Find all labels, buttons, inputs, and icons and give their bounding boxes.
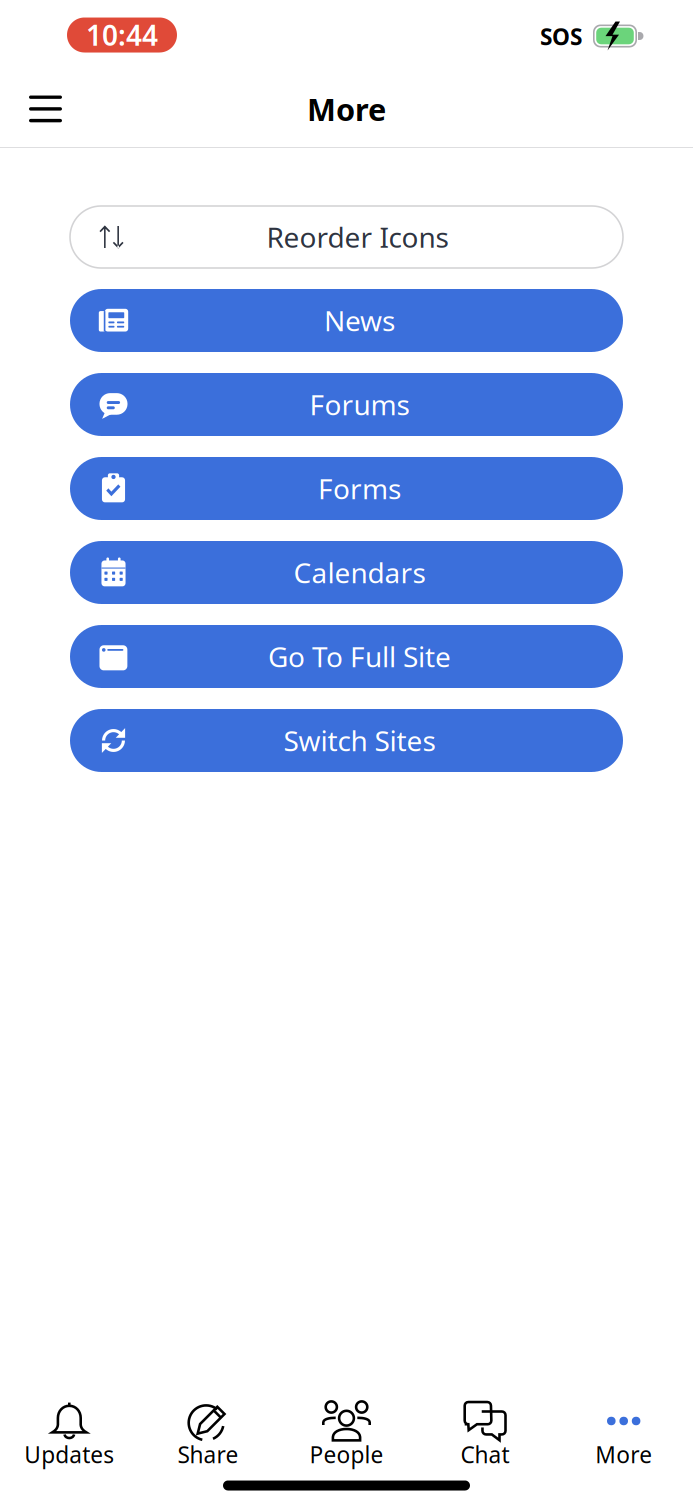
button[interactable]: Switch Sites [70,709,623,772]
staticText: People [309,1439,383,1469]
staticText: 10:44 [86,16,158,54]
button[interactable]: Forms [70,457,623,520]
staticText: More [307,89,386,129]
button[interactable]: Reorder Icons [70,206,623,268]
staticText: More [595,1439,652,1469]
button[interactable]: Calendars [70,541,623,604]
button[interactable]: More [554,1389,693,1471]
staticText: News [324,302,395,339]
staticText: Switch Sites [283,722,435,759]
button[interactable]: Chat [416,1389,554,1471]
staticText: SOS [540,21,582,51]
button[interactable]: News [70,289,623,352]
staticText: Updates [24,1439,114,1469]
button[interactable]: Go To Full Site [70,625,623,688]
button[interactable]: Menu [15,79,76,138]
button[interactable]: Updates [0,1389,139,1471]
staticText: Reorder Icons [266,218,448,256]
staticText: Calendars [293,554,425,591]
staticText: Chat [461,1439,510,1469]
staticText: Share [177,1439,238,1469]
button[interactable]: Forums [70,373,623,436]
staticText: Forums [309,386,409,423]
staticText: Go To Full Site [268,638,451,675]
button[interactable]: Share [139,1389,277,1471]
button[interactable]: People [277,1389,416,1471]
staticText: Forms [318,470,401,507]
